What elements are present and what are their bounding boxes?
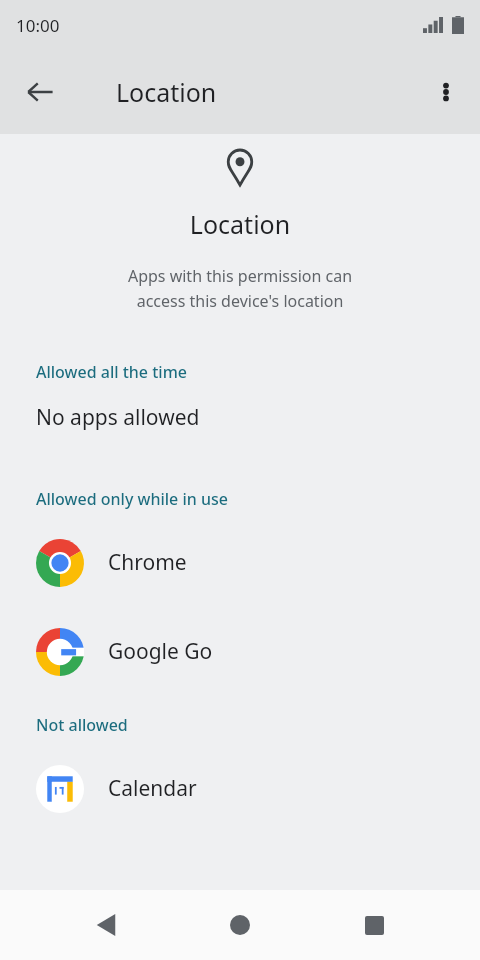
- staticText: Calendar: [108, 774, 197, 803]
- staticText: 10:00: [16, 14, 60, 37]
- button[interactable]: More options: [422, 68, 470, 116]
- button[interactable]: Home: [212, 897, 268, 953]
- staticText: Allowed only while in use: [36, 488, 480, 510]
- button[interactable]: Back: [78, 897, 134, 953]
- staticText: Location: [0, 207, 480, 241]
- staticText: Google Go: [108, 637, 213, 666]
- staticText: Chrome: [108, 548, 187, 577]
- staticText: Location: [116, 75, 217, 109]
- staticText: Allowed all the time: [36, 361, 480, 383]
- button[interactable]: Recent apps: [346, 897, 402, 953]
- staticText: No apps allowed: [36, 403, 200, 432]
- button[interactable]: Back: [12, 64, 68, 120]
- staticText: Apps with this permission can access thi…: [24, 265, 456, 311]
- button[interactable]: Chrome: [0, 518, 480, 607]
- staticText: Not allowed: [36, 714, 480, 736]
- button[interactable]: Google Go: [0, 607, 480, 696]
- button[interactable]: Calendar: [0, 744, 480, 833]
